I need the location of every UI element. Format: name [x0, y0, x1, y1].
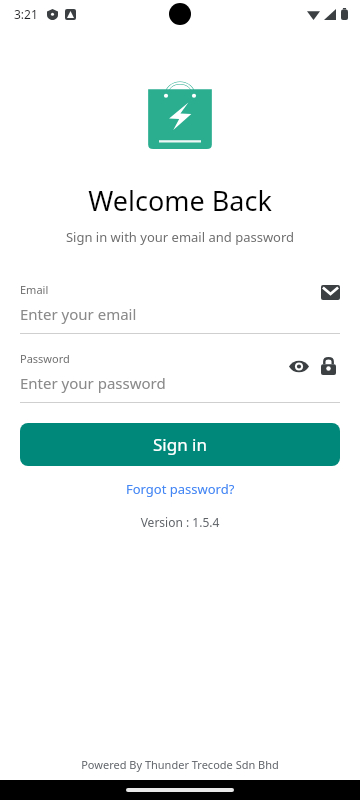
button[interactable]: Sign in — [20, 423, 340, 466]
other: Password locked — [316, 354, 340, 378]
other: Email — [321, 285, 340, 300]
staticText: Sign in — [153, 433, 207, 456]
other: Online Catalog logo — [145, 76, 215, 152]
button[interactable]: Show password — [287, 354, 311, 378]
staticText: Enter your email — [20, 304, 137, 324]
button[interactable]: Password — [20, 351, 340, 403]
button[interactable]: Forgot password? — [116, 476, 245, 502]
staticText: Welcome Back — [0, 182, 360, 219]
staticText: Powered By Thunder Trecode Sdn Bhd — [0, 757, 360, 772]
staticText: Email — [20, 282, 49, 297]
staticText: Sign in with your email and password — [0, 228, 360, 246]
button[interactable]: Email — [20, 282, 340, 334]
staticText: Enter your password — [20, 373, 166, 393]
staticText: Password — [20, 351, 70, 366]
staticText: Version : 1.5.4 — [0, 514, 360, 530]
staticText: 3:21 — [14, 6, 38, 22]
